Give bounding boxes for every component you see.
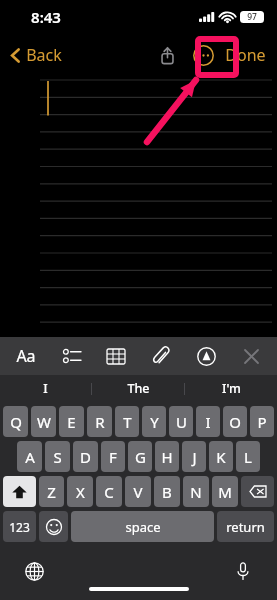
staticText: Z	[47, 482, 56, 502]
button[interactable]: return	[217, 511, 274, 542]
staticText: X	[76, 482, 85, 502]
button[interactable]: Close	[232, 337, 270, 375]
staticText: 8:43	[31, 7, 61, 27]
button[interactable]: N	[183, 476, 209, 507]
button[interactable]: R	[87, 406, 112, 437]
staticText: 97	[247, 11, 257, 23]
staticText: Done	[225, 44, 266, 66]
button[interactable]: I'm	[185, 375, 277, 402]
button[interactable]: S	[45, 441, 70, 472]
button[interactable]: B	[154, 476, 180, 507]
button[interactable]: Change keyboard	[21, 558, 47, 584]
staticText: B	[162, 482, 172, 502]
staticText: M	[218, 482, 232, 502]
button[interactable]: Table	[97, 337, 135, 375]
button[interactable]: space	[71, 511, 214, 542]
staticText: I	[43, 380, 48, 397]
staticText: W	[37, 412, 51, 432]
button[interactable]: A	[17, 441, 42, 472]
staticText: D	[80, 447, 91, 467]
button[interactable]: I	[0, 375, 91, 402]
staticText: R	[95, 412, 105, 432]
staticText: E	[67, 412, 76, 432]
button[interactable]: U	[169, 406, 193, 437]
button[interactable]: M	[212, 476, 238, 507]
button[interactable]: Dictate	[230, 558, 256, 584]
button[interactable]: Q	[3, 406, 28, 437]
staticText: S	[53, 447, 62, 467]
button[interactable]: J	[182, 441, 206, 472]
button[interactable]: 123	[3, 511, 36, 542]
button[interactable]: Share	[151, 39, 183, 71]
button[interactable]: G	[128, 441, 152, 472]
button[interactable]: Done	[219, 38, 272, 72]
button[interactable]: L	[236, 441, 260, 472]
staticText: C	[104, 482, 114, 502]
staticText: V	[133, 482, 143, 502]
button[interactable]: Shift	[3, 476, 36, 507]
button[interactable]: V	[125, 476, 151, 507]
staticText: Y	[150, 412, 159, 432]
button[interactable]: I	[196, 406, 220, 437]
button[interactable]: C	[96, 476, 122, 507]
button[interactable]: Aa	[7, 337, 45, 375]
button[interactable]: K	[209, 441, 233, 472]
button[interactable]: O	[223, 406, 247, 437]
button[interactable]: Markup	[187, 337, 225, 375]
staticText: T	[123, 412, 132, 432]
staticText: I	[205, 412, 211, 432]
button[interactable]: W	[31, 406, 56, 437]
staticText: P	[257, 412, 267, 432]
staticText: L	[244, 447, 252, 467]
button[interactable]: H	[155, 441, 179, 472]
staticText: F	[109, 447, 117, 467]
button[interactable]: Back	[8, 39, 65, 71]
staticText: space	[125, 518, 161, 536]
staticText: A	[25, 447, 35, 467]
staticText: N	[190, 482, 202, 502]
button[interactable]: Emoji	[39, 511, 68, 542]
button[interactable]: X	[67, 476, 93, 507]
button[interactable]: The	[92, 375, 184, 402]
staticText: 123	[9, 519, 30, 535]
staticText: Back	[26, 44, 62, 66]
staticText: G	[135, 447, 146, 467]
staticText: The	[127, 380, 150, 397]
button[interactable]: More options	[188, 40, 218, 70]
button[interactable]: Attach	[142, 337, 180, 375]
staticText: H	[161, 447, 173, 467]
button[interactable]: T	[115, 406, 139, 437]
button[interactable]: F	[101, 441, 125, 472]
staticText: Q	[10, 412, 22, 432]
staticText: Aa	[16, 345, 36, 367]
staticText: U	[176, 412, 187, 432]
button[interactable]: Delete	[241, 476, 274, 507]
staticText: return	[226, 518, 265, 536]
button[interactable]: Y	[142, 406, 166, 437]
button[interactable]: P	[250, 406, 274, 437]
staticText: K	[216, 447, 226, 467]
staticText: I'm	[222, 380, 241, 397]
staticText: O	[229, 412, 241, 432]
button[interactable]: Z	[39, 476, 64, 507]
button[interactable]: Checklist	[52, 337, 90, 375]
button[interactable]: E	[59, 406, 84, 437]
staticText: J	[192, 447, 197, 467]
button[interactable]: D	[73, 441, 98, 472]
